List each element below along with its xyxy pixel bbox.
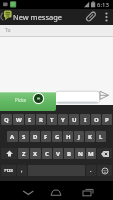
button[interactable]: P bbox=[102, 114, 112, 125]
button[interactable]: M bbox=[86, 148, 96, 159]
button[interactable]: . bbox=[86, 165, 96, 176]
button[interactable]: G bbox=[52, 131, 62, 142]
button[interactable]: U bbox=[69, 114, 79, 125]
staticText: P bbox=[105, 116, 109, 124]
staticText: Q bbox=[4, 116, 9, 124]
staticText: H bbox=[66, 133, 71, 141]
staticText: ?123 bbox=[4, 168, 13, 173]
staticText: Z bbox=[22, 150, 26, 158]
button[interactable]: C bbox=[42, 148, 52, 159]
button[interactable] bbox=[1, 148, 17, 159]
button[interactable]: Z bbox=[18, 148, 29, 159]
staticText: E bbox=[28, 116, 32, 124]
staticText: G bbox=[55, 133, 60, 141]
button[interactable] bbox=[97, 148, 112, 159]
button[interactable]: J bbox=[74, 131, 84, 142]
button[interactable]: R bbox=[36, 114, 46, 125]
staticText: Picke bbox=[15, 97, 26, 103]
button[interactable] bbox=[55, 91, 100, 104]
button[interactable]: To bbox=[0, 25, 113, 37]
button[interactable] bbox=[99, 90, 110, 101]
staticText: L bbox=[99, 133, 103, 141]
button[interactable]: Y bbox=[58, 114, 68, 125]
staticText: . bbox=[90, 167, 92, 174]
button[interactable] bbox=[47, 183, 65, 199]
staticText: O bbox=[94, 116, 99, 124]
staticText: J bbox=[78, 133, 80, 141]
staticText: T bbox=[50, 116, 54, 124]
button[interactable]: B bbox=[64, 148, 74, 159]
staticText: R bbox=[39, 116, 43, 124]
staticText: K bbox=[88, 133, 92, 141]
staticText: I bbox=[84, 116, 87, 124]
button[interactable]: D bbox=[30, 131, 40, 142]
staticText: , bbox=[21, 167, 23, 174]
button[interactable] bbox=[97, 165, 112, 176]
button[interactable]: F bbox=[41, 131, 51, 142]
button[interactable]: N bbox=[75, 148, 85, 159]
staticText: A bbox=[10, 133, 15, 141]
staticText: N bbox=[78, 150, 83, 158]
button[interactable]: I bbox=[80, 114, 90, 125]
staticText: D bbox=[33, 133, 38, 141]
button[interactable] bbox=[78, 183, 96, 199]
button[interactable]: O bbox=[91, 114, 101, 125]
button[interactable]: ?123 bbox=[1, 165, 16, 176]
button[interactable]: , bbox=[17, 165, 27, 176]
staticText: 6:13 bbox=[97, 1, 109, 9]
staticText: M bbox=[88, 150, 94, 158]
staticText: New message bbox=[13, 12, 63, 22]
staticText: X bbox=[33, 150, 38, 158]
button[interactable]: S bbox=[19, 131, 29, 142]
staticText: Y bbox=[61, 116, 65, 124]
staticText: W bbox=[16, 116, 22, 124]
button[interactable] bbox=[84, 9, 100, 25]
staticText: U bbox=[72, 116, 77, 124]
staticText: B bbox=[67, 150, 71, 158]
button[interactable]: T bbox=[47, 114, 57, 125]
button[interactable]: X bbox=[30, 148, 41, 159]
button[interactable] bbox=[19, 183, 37, 199]
button[interactable]: H bbox=[63, 131, 73, 142]
button[interactable]: V bbox=[53, 148, 63, 159]
button[interactable]: Picke bbox=[0, 92, 56, 111]
button[interactable]: K bbox=[85, 131, 95, 142]
button[interactable]: Q bbox=[1, 114, 12, 125]
staticText: S bbox=[22, 133, 26, 141]
staticText: F bbox=[44, 133, 48, 141]
button[interactable]: E bbox=[25, 114, 35, 125]
staticText: To bbox=[5, 27, 11, 34]
button[interactable] bbox=[100, 9, 113, 25]
staticText: C bbox=[45, 150, 49, 158]
button[interactable]: W bbox=[13, 114, 24, 125]
button[interactable]: A bbox=[7, 131, 18, 142]
staticText: V bbox=[56, 150, 60, 158]
button[interactable]: L bbox=[96, 131, 106, 142]
